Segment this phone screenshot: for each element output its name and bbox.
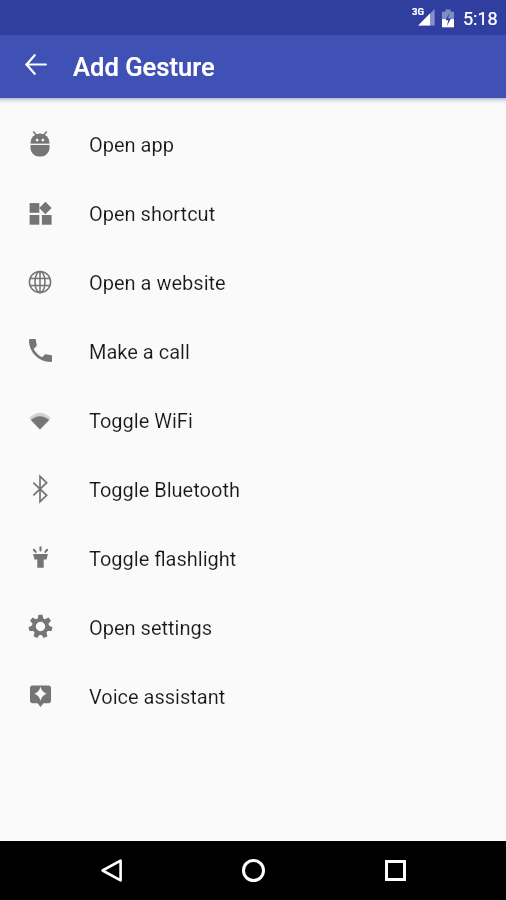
button[interactable]: Back [40, 841, 182, 900]
staticText: Make a call [89, 340, 190, 363]
button[interactable]: Open a website [0, 248, 506, 317]
button[interactable]: Open app [0, 110, 506, 179]
staticText: Open app [89, 133, 174, 156]
staticText: 3G [412, 6, 424, 17]
button[interactable]: Make a call [0, 317, 506, 386]
button[interactable]: Voice assistant [0, 662, 506, 731]
button[interactable]: Toggle flashlight [0, 524, 506, 593]
button[interactable]: Home [182, 841, 324, 900]
button[interactable]: Recents [324, 841, 466, 900]
staticText: Voice assistant [89, 685, 226, 708]
button[interactable]: Back [0, 35, 73, 98]
staticText: Toggle WiFi [89, 409, 193, 432]
staticText: Open shortcut [89, 202, 216, 225]
staticText: 5:18 [463, 8, 498, 29]
button[interactable]: Open shortcut [0, 179, 506, 248]
staticText: Toggle flashlight [89, 547, 237, 570]
button[interactable]: Toggle WiFi [0, 386, 506, 455]
button[interactable]: Toggle Bluetooth [0, 455, 506, 524]
staticText: Open a website [89, 271, 226, 294]
staticText: Toggle Bluetooth [89, 478, 240, 501]
button[interactable]: Open settings [0, 593, 506, 662]
staticText: Open settings [89, 616, 213, 639]
staticText: Add Gesture [73, 52, 215, 82]
